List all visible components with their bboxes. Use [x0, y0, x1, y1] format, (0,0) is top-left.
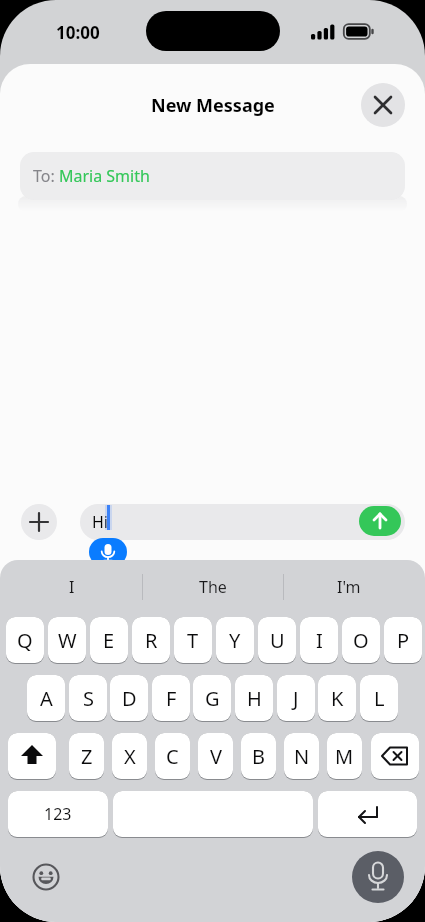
staticText: K	[331, 685, 344, 712]
button[interactable]: J	[277, 675, 315, 721]
button[interactable]: S	[69, 675, 107, 721]
button[interactable]: P	[384, 617, 422, 663]
staticText: T	[187, 627, 199, 654]
button[interactable]	[359, 506, 401, 536]
staticText: D	[122, 685, 137, 712]
button[interactable]: Y	[216, 617, 254, 663]
button[interactable]	[8, 733, 56, 779]
button[interactable]: H	[235, 675, 273, 721]
button[interactable]	[31, 862, 61, 892]
button[interactable]: R	[132, 617, 170, 663]
button[interactable]: To: Maria Smith	[20, 152, 405, 200]
staticText: G	[205, 685, 220, 712]
button[interactable]: B	[241, 733, 276, 779]
button[interactable]: Q	[6, 617, 44, 663]
staticText: H	[247, 685, 262, 712]
staticText: I	[69, 576, 75, 598]
staticText: S	[83, 685, 94, 712]
button[interactable]: 123	[8, 791, 108, 837]
staticText: I'm	[337, 576, 361, 598]
staticText: New Message	[151, 93, 275, 118]
button[interactable]: Z	[69, 733, 104, 779]
button[interactable]: C	[155, 733, 190, 779]
staticText: 10:00	[56, 21, 100, 44]
staticText: A	[40, 685, 53, 712]
staticText: R	[145, 627, 158, 654]
button[interactable]: A	[27, 675, 65, 721]
button[interactable]: I	[10, 572, 134, 602]
staticText: Y	[229, 627, 241, 654]
button[interactable]: I'm	[283, 572, 415, 602]
button[interactable]	[318, 791, 417, 837]
staticText: N	[294, 743, 310, 770]
staticText: C	[166, 743, 179, 770]
staticText: Z	[81, 743, 93, 770]
button[interactable]: N	[284, 733, 319, 779]
button[interactable]: V	[198, 733, 233, 779]
staticText: I	[316, 627, 323, 654]
button[interactable]: W	[48, 617, 86, 663]
button[interactable]: M	[327, 733, 362, 779]
button[interactable]: E	[90, 617, 128, 663]
staticText: L	[374, 685, 385, 712]
button[interactable]: U	[258, 617, 296, 663]
button[interactable]	[21, 504, 57, 540]
button[interactable]: G	[193, 675, 231, 721]
button[interactable]	[89, 538, 127, 566]
staticText: 123	[44, 803, 72, 825]
button[interactable]	[371, 733, 419, 779]
button[interactable]: X	[112, 733, 147, 779]
button[interactable]: The	[142, 572, 283, 602]
button[interactable]: Hi	[80, 504, 405, 540]
button[interactable]: F	[152, 675, 190, 721]
staticText: U	[270, 627, 285, 654]
staticText: Q	[17, 627, 33, 654]
staticText: O	[353, 627, 369, 654]
button[interactable]: L	[360, 675, 398, 721]
button[interactable]: O	[342, 617, 380, 663]
button[interactable]	[361, 83, 405, 127]
button[interactable]: K	[318, 675, 356, 721]
staticText: F	[166, 685, 177, 712]
staticText: P	[397, 627, 410, 654]
staticText: To: Maria Smith	[33, 165, 150, 187]
staticText: B	[252, 743, 265, 770]
staticText: Hi	[92, 511, 108, 533]
button[interactable]	[113, 791, 313, 837]
staticText: The	[199, 576, 227, 598]
button[interactable]	[352, 851, 404, 903]
staticText: M	[335, 743, 354, 770]
button[interactable]: T	[174, 617, 212, 663]
button[interactable]: I	[300, 617, 338, 663]
staticText: V	[210, 743, 222, 770]
button[interactable]: D	[110, 675, 148, 721]
staticText: J	[293, 685, 299, 712]
staticText: X	[124, 743, 136, 770]
staticText: E	[103, 627, 115, 654]
staticText: W	[58, 627, 77, 654]
